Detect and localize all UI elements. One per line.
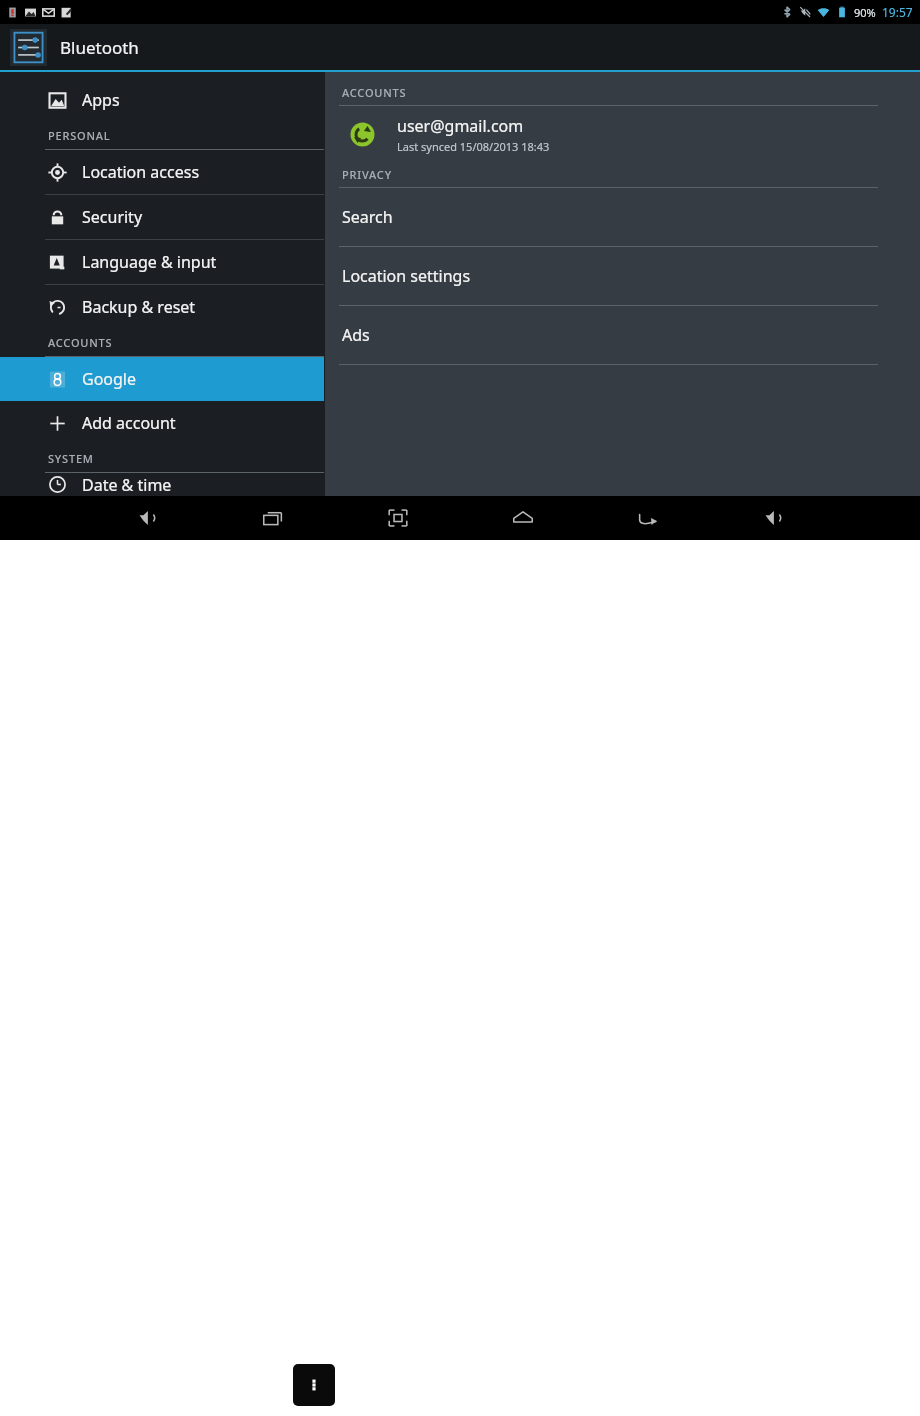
button[interactable]: Location settings [325, 247, 920, 305]
button[interactable]: user@gmail.com [325, 106, 920, 162]
staticText: Ads [342, 324, 370, 346]
staticText: Location settings [342, 265, 471, 287]
staticText: ACCOUNTS [48, 335, 113, 350]
button[interactable]: Volume down [120, 496, 174, 540]
staticText: 19:57 [882, 4, 913, 20]
button[interactable]: Date & time [0, 473, 324, 496]
staticText: Search [342, 206, 393, 228]
button[interactable]: More options [293, 1364, 335, 1406]
button[interactable]: Google [0, 357, 324, 401]
button[interactable]: Ads [325, 306, 920, 364]
button[interactable]: Search [325, 188, 920, 246]
button[interactable]: Back [621, 496, 675, 540]
staticText: user@gmail.com [397, 115, 524, 137]
button[interactable]: Recent apps [246, 496, 300, 540]
staticText: SYSTEM [48, 451, 94, 466]
staticText: PRIVACY [342, 167, 392, 182]
button[interactable]: Settings [10, 29, 47, 66]
staticText: Date & time [82, 474, 172, 496]
button[interactable]: Language & input [0, 240, 324, 284]
staticText: Last synced 15/08/2013 18:43 [397, 139, 550, 154]
staticText: Apps [82, 89, 120, 111]
staticText: 90% [854, 5, 876, 20]
staticText: PERSONAL [48, 128, 111, 143]
button[interactable]: Apps [0, 78, 324, 122]
staticText: Bluetooth [60, 36, 139, 59]
button[interactable]: Home [496, 496, 550, 540]
button[interactable]: Security [0, 195, 324, 239]
staticText: Security [82, 206, 143, 228]
staticText: Language & input [82, 251, 217, 273]
button[interactable]: Location access [0, 150, 324, 194]
staticText: Google [82, 368, 137, 390]
button[interactable]: Volume up [746, 496, 800, 540]
button[interactable]: Screenshot [371, 496, 425, 540]
button[interactable]: Backup & reset [0, 285, 324, 329]
staticText: ACCOUNTS [342, 85, 407, 100]
staticText: Location access [82, 161, 200, 183]
button[interactable]: Add account [0, 401, 324, 445]
staticText: Backup & reset [82, 296, 196, 318]
staticText: Add account [82, 412, 176, 434]
